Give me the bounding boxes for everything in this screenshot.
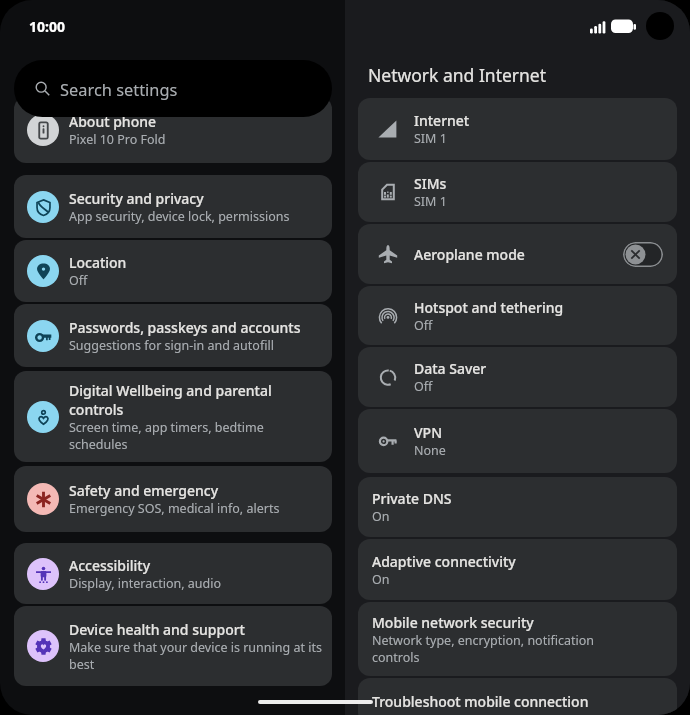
button[interactable]: Internet	[358, 98, 677, 160]
staticText: Device health and support	[69, 620, 245, 639]
staticText: Pixel 10 Pro Fold	[69, 131, 166, 148]
button[interactable]: Search settings	[14, 60, 332, 117]
button[interactable]: Accessibility	[14, 543, 332, 604]
staticText: About phone	[69, 112, 157, 131]
staticText: Internet	[414, 111, 470, 130]
button[interactable]: Troubleshoot mobile connection	[358, 678, 677, 715]
button[interactable]: Device health and support	[14, 606, 332, 686]
staticText: Suggestions for sign-in and autofill	[69, 337, 274, 354]
button[interactable]: Data Saver	[358, 347, 677, 407]
staticText: On	[372, 508, 390, 525]
staticText: schedules	[69, 436, 128, 453]
staticText: Network and Internet	[368, 63, 547, 87]
staticText: Digital Wellbeing and parental	[69, 381, 272, 400]
staticText: None	[414, 442, 446, 459]
button[interactable]: Digital Wellbeing and parental	[14, 371, 332, 462]
staticText: Troubleshoot mobile connection	[372, 692, 589, 711]
staticText: SIM 1	[414, 130, 447, 147]
staticText: Emergency SOS, medical info, alerts	[69, 500, 280, 517]
staticText: 10:00	[29, 17, 65, 36]
button[interactable]: Location	[14, 240, 332, 302]
staticText: Passwords, passkeys and accounts	[69, 318, 301, 337]
staticText: Make sure that your device is running at…	[69, 639, 322, 656]
button[interactable]: About phone	[14, 97, 332, 163]
button[interactable]: Passwords, passkeys and accounts	[14, 304, 332, 367]
staticText: Private DNS	[372, 489, 452, 508]
button[interactable]: Private DNS	[358, 477, 677, 537]
staticText: Off	[414, 317, 433, 334]
staticText: Accessibility	[69, 556, 151, 575]
button[interactable]: Adaptive connectivity	[358, 539, 677, 600]
staticText: Screen time, app timers, bedtime	[69, 419, 264, 436]
staticText: controls	[69, 400, 124, 419]
staticText: Mobile network security	[372, 613, 534, 632]
staticText: SIM 1	[414, 193, 447, 210]
staticText: Security and privacy	[69, 189, 204, 208]
staticText: Network type, encryption, notification	[372, 632, 594, 649]
staticText: Data Saver	[414, 359, 487, 378]
button[interactable]: Security and privacy	[14, 175, 332, 238]
button[interactable]: VPN	[358, 409, 677, 473]
button[interactable]: SIMs	[358, 162, 677, 222]
staticText: Off	[414, 378, 433, 395]
staticText: VPN	[414, 423, 443, 442]
staticText: Adaptive connectivity	[372, 552, 516, 571]
staticText: Off	[69, 272, 88, 289]
staticText: App security, device lock, permissions	[69, 208, 290, 225]
staticText: On	[372, 571, 390, 588]
staticText: Display, interaction, audio	[69, 575, 222, 592]
staticText: Aeroplane mode	[414, 245, 525, 264]
button[interactable]: Safety and emergency	[14, 466, 332, 532]
staticText: controls	[372, 649, 420, 666]
staticText: best	[69, 656, 95, 673]
staticText: Location	[69, 253, 127, 272]
button[interactable]: Hotspot and tethering	[358, 286, 677, 345]
button[interactable]: Aeroplane mode	[358, 224, 677, 284]
button[interactable]: Mobile network security	[358, 602, 677, 676]
staticText: SIMs	[414, 174, 447, 193]
button[interactable]: Aeroplane mode toggle	[623, 242, 663, 267]
staticText: Hotspot and tethering	[414, 298, 564, 317]
staticText: Search settings	[60, 78, 178, 100]
staticText: Safety and emergency	[69, 481, 219, 500]
